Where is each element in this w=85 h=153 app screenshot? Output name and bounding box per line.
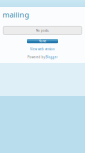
staticText: Home	[38, 39, 46, 43]
button[interactable]: Blogger	[45, 55, 57, 59]
staticText: View web version	[30, 47, 55, 51]
staticText: mailing	[3, 10, 30, 20]
staticText: Blogger	[45, 55, 57, 59]
staticText: Powered by	[28, 55, 45, 59]
button[interactable]: View web version	[30, 47, 55, 51]
staticText: No posts.	[36, 28, 49, 33]
button[interactable]: Home	[27, 39, 58, 43]
